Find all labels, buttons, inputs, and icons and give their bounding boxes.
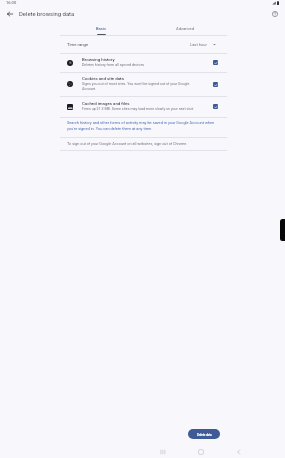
staticText: Browsing history bbox=[82, 57, 115, 62]
staticText: Delete browsing data bbox=[19, 11, 75, 18]
staticText: Cached images and files bbox=[82, 101, 130, 106]
staticText: Time range bbox=[67, 42, 89, 47]
button[interactable]: Time range bbox=[60, 35, 227, 53]
button[interactable]: Advanced bbox=[143, 21, 227, 35]
button[interactable]: Cached images and files checkbox bbox=[213, 104, 218, 109]
staticText: Signs you out of most sites. You won't b… bbox=[82, 82, 190, 91]
button[interactable]: Cached images and files bbox=[60, 96, 227, 117]
button[interactable]: Recents bbox=[156, 445, 170, 458]
button[interactable]: Cookies and site data checkbox bbox=[213, 82, 218, 87]
button[interactable]: Back bbox=[2, 8, 18, 20]
staticText: Basic bbox=[96, 26, 107, 31]
button[interactable]: Help bbox=[267, 8, 283, 20]
staticText: Frees up 21.3 MB. Some sites may load mo… bbox=[82, 107, 194, 111]
button[interactable]: Browsing history bbox=[60, 53, 227, 72]
staticText: Cookies and site data bbox=[82, 76, 124, 81]
staticText: Last hour bbox=[190, 42, 207, 47]
button[interactable]: Cookies and site data bbox=[60, 72, 227, 96]
staticText: Advanced bbox=[176, 26, 195, 31]
staticText: Delete data bbox=[197, 433, 212, 436]
staticText: To sign out of your Google Account on al… bbox=[67, 141, 188, 145]
button[interactable]: Browsing history checkbox bbox=[213, 60, 218, 65]
staticText: Deletes history from all synced devices bbox=[82, 63, 145, 67]
button[interactable]: Back bbox=[232, 445, 246, 458]
staticText: 16:00 bbox=[6, 0, 17, 5]
button[interactable]: Home bbox=[194, 445, 208, 458]
button[interactable]: Basic bbox=[60, 21, 143, 35]
button[interactable]: Search history and other forms of activi… bbox=[67, 120, 215, 131]
button[interactable]: Delete data bbox=[188, 429, 220, 439]
